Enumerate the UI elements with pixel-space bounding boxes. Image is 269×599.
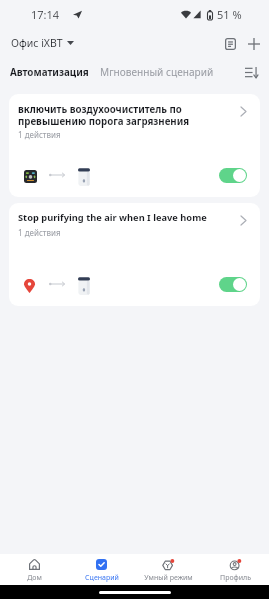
staticText: 1 действия [18,129,61,140]
staticText: включить воздухоочиститель по превышению… [18,103,190,128]
button[interactable]: Автоматизация [8,61,91,84]
button[interactable]: включить воздухоочиститель по превышению… [9,94,260,197]
staticText: Мгновенный сценарий [100,65,214,79]
button[interactable]: Офис iXBT [9,33,76,53]
button[interactable]: Сценарий [68,554,135,585]
staticText: Сценарий [85,573,119,583]
button[interactable]: Мгновенный сценарий [98,60,216,84]
staticText: 17:14 [31,7,60,22]
staticText: Автоматизация [10,66,89,79]
staticText: Умный режим [144,573,193,583]
button[interactable]: Профиль [202,554,269,585]
staticText: Stop purifying the air when I leave home [18,211,207,224]
button[interactable]: Toggle scenario [219,277,247,292]
staticText: 1 действия [18,227,61,238]
staticText: 51 % [217,7,242,22]
button[interactable]: Дом [0,554,68,585]
button[interactable]: Sort [239,60,263,84]
button[interactable]: Add [243,33,264,54]
button[interactable]: Stop purifying the air when I leave home [9,203,260,306]
button[interactable]: Toggle scenario [219,168,247,183]
staticText: Профиль [220,573,251,583]
button[interactable]: Умный режим [135,554,202,585]
staticText: Офис iXBT [11,36,63,50]
button[interactable]: Device list [220,33,241,54]
staticText: Дом [27,573,42,583]
